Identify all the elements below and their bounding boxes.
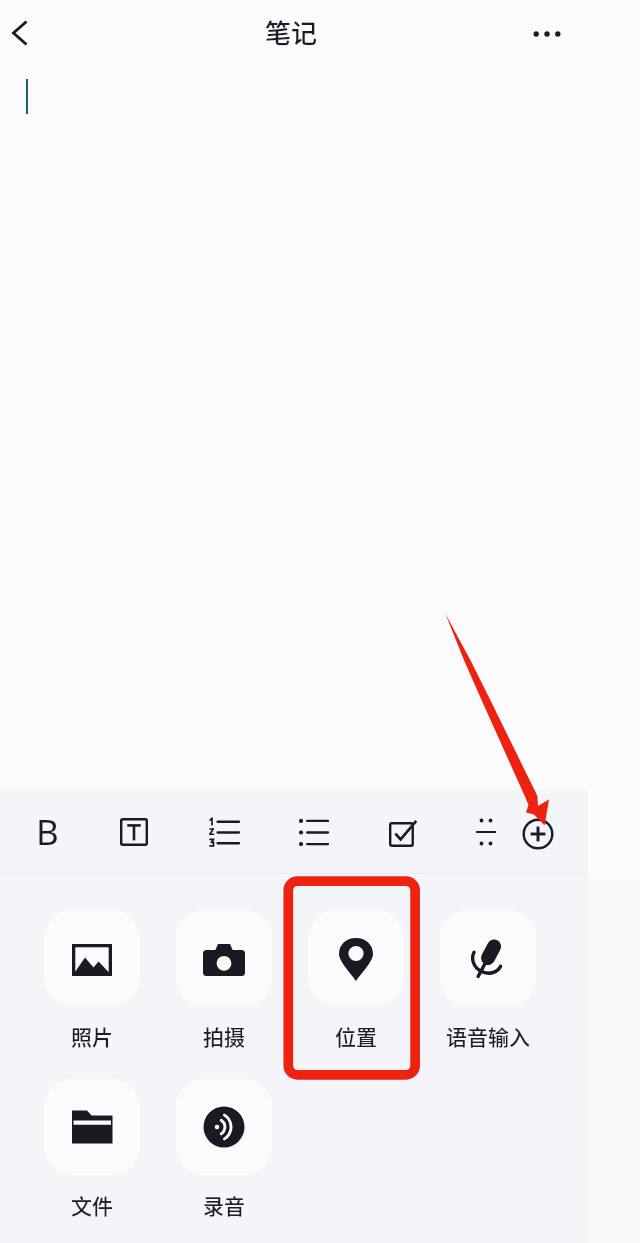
staticText: 拍摄 <box>203 1021 245 1051</box>
button[interactable]: 录音 <box>162 1079 286 1220</box>
button[interactable]: Back <box>0 5 47 60</box>
button[interactable]: More options <box>521 8 573 60</box>
button[interactable]: Ordered list <box>186 793 262 871</box>
staticText: 录音 <box>203 1190 245 1220</box>
button[interactable]: 语音输入 <box>426 910 550 1051</box>
staticText: 照片 <box>71 1021 113 1051</box>
staticText: 文件 <box>71 1190 113 1220</box>
button[interactable]: Add attachment <box>500 793 576 871</box>
button[interactable]: 拍摄 <box>162 910 286 1051</box>
button[interactable]: Bold <box>9 793 85 871</box>
button[interactable]: Bulleted list <box>275 793 351 871</box>
staticText: 位置 <box>335 1021 377 1051</box>
staticText: 语音输入 <box>446 1021 530 1051</box>
staticText: B <box>36 808 59 856</box>
button[interactable]: 文件 <box>30 1079 154 1220</box>
button[interactable]: More formats <box>448 793 524 871</box>
staticText: 笔记 <box>265 13 318 51</box>
button[interactable]: 照片 <box>30 910 154 1051</box>
button[interactable]: 位置 <box>294 910 418 1051</box>
button[interactable]: Text style <box>96 793 172 871</box>
button[interactable]: Checklist <box>365 793 441 871</box>
